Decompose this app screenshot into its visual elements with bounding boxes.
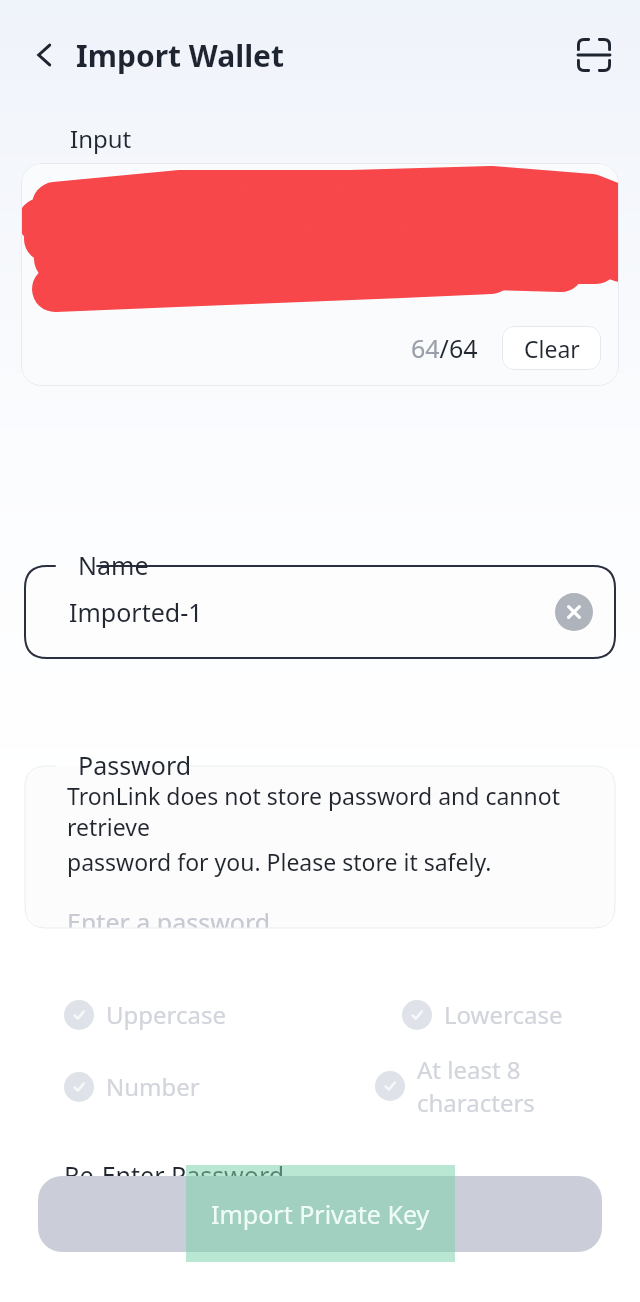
button[interactable]: Back: [18, 28, 72, 82]
staticText: Input: [70, 122, 132, 155]
button[interactable]: Imported-1: [25, 566, 615, 658]
button[interactable]: TronLink does not store password and can…: [25, 766, 615, 928]
button[interactable]: Clear name: [555, 593, 593, 631]
staticText: Import Private Key: [211, 1197, 430, 1231]
staticText: Enter a password: [67, 905, 271, 928]
staticText: Re-Enter Password: [64, 1158, 285, 1192]
staticText: Name: [78, 548, 149, 582]
staticText: Clear: [524, 333, 580, 364]
staticText: Lowercase: [444, 998, 563, 1031]
staticText: Import Wallet: [76, 35, 285, 76]
button[interactable]: 64/64: [21, 163, 619, 386]
staticText: Number: [106, 1070, 200, 1103]
staticText: TronLink does not store password and can…: [67, 780, 591, 842]
staticText: Uppercase: [106, 998, 227, 1031]
staticText: Password: [78, 748, 192, 782]
button[interactable]: Scan QR code: [566, 27, 622, 83]
staticText: At least 8 characters: [417, 1053, 640, 1119]
button[interactable]: [38, 1176, 602, 1252]
button[interactable]: Clear: [502, 326, 601, 370]
staticText: password for you. Please store it safely…: [67, 846, 492, 877]
staticText: 64/64: [411, 331, 478, 365]
staticText: Imported-1: [69, 595, 203, 629]
